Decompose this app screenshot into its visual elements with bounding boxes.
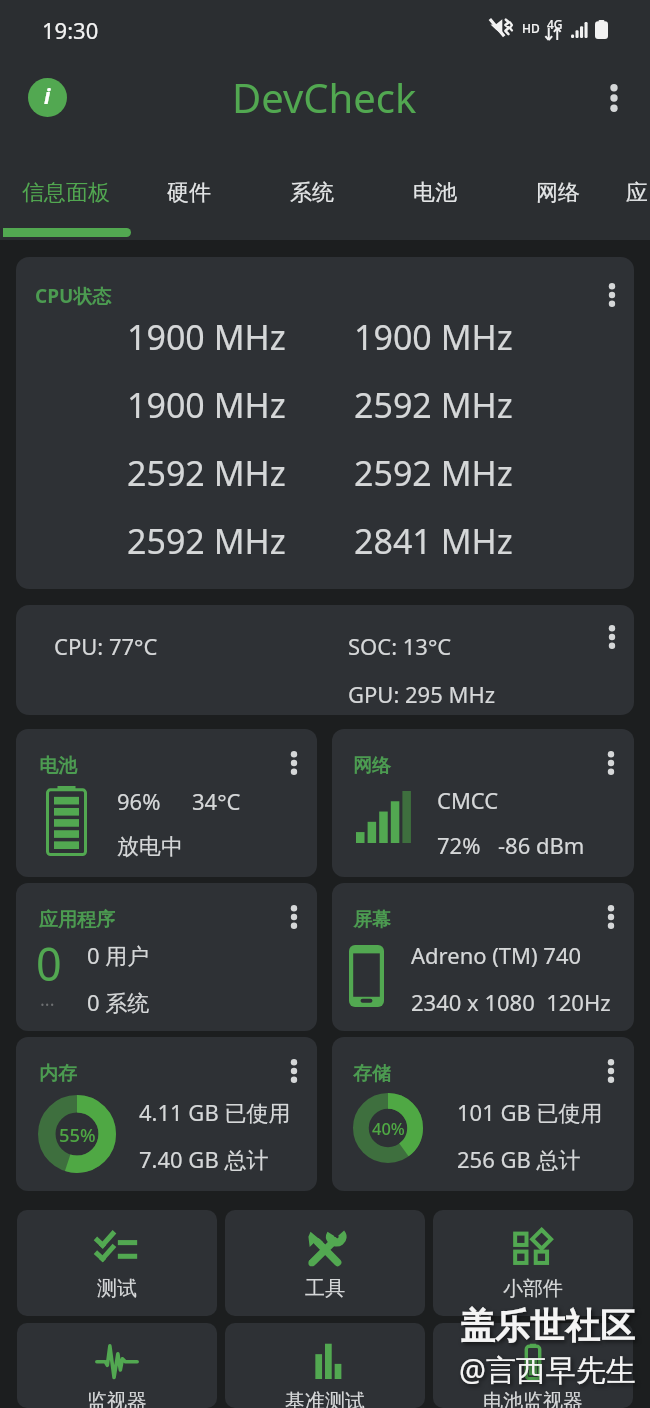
staticText: 监视器 — [87, 1389, 147, 1408]
staticText: 系统 — [290, 179, 334, 207]
button[interactable]: 监视器 — [17, 1323, 217, 1408]
button[interactable]: Card menu — [592, 744, 630, 782]
staticText: i — [44, 82, 51, 111]
staticText: ... — [40, 987, 55, 1012]
staticText: 小部件 — [503, 1276, 563, 1301]
staticText: 96% — [117, 786, 161, 816]
staticText: 工具 — [305, 1276, 345, 1301]
staticText: SOC: 13°C — [348, 631, 452, 661]
staticText: 测试 — [97, 1276, 137, 1301]
staticText: 7.40 GB 总计 — [139, 1144, 269, 1174]
staticText: 0 — [36, 933, 62, 994]
staticText: 0 用户 — [87, 940, 150, 970]
staticText: 网络 — [353, 754, 391, 778]
button[interactable]: 网络 — [332, 729, 634, 877]
button[interactable]: 应用程序 — [16, 883, 317, 1031]
staticText: 信息面板 — [22, 179, 110, 207]
button[interactable]: 系统 — [246, 150, 369, 240]
staticText: 4G — [547, 16, 563, 32]
button[interactable]: 电池监视器 — [433, 1323, 633, 1408]
button[interactable]: Card menu — [593, 618, 631, 656]
staticText: DevCheck — [232, 70, 417, 124]
staticText: 19:30 — [42, 15, 99, 45]
staticText: CPU: 77°C — [54, 631, 158, 661]
staticText: 4.11 GB 已使用 — [139, 1097, 291, 1127]
staticText: 应 — [626, 179, 648, 207]
staticText: 应用程序 — [39, 908, 115, 932]
staticText: 电池 — [39, 754, 77, 778]
staticText: 2592 MHz — [354, 382, 513, 428]
button[interactable]: 基准测试 — [225, 1323, 425, 1408]
staticText: 0 系统 — [87, 987, 150, 1017]
staticText: 2592 MHz — [127, 450, 286, 496]
staticText: Adreno (TM) 740 — [411, 940, 582, 970]
staticText: 电池监视器 — [483, 1389, 583, 1408]
staticText: 34°C — [192, 786, 241, 816]
staticText: 2592 MHz — [354, 450, 513, 496]
staticText: 放电中 — [117, 833, 183, 861]
staticText: 盖乐世社区 — [460, 1304, 635, 1348]
button[interactable]: 屏幕 — [332, 883, 634, 1031]
staticText: 存储 — [353, 1062, 391, 1086]
staticText: -86 dBm — [498, 830, 585, 860]
staticText: 1900 MHz — [354, 314, 513, 360]
button[interactable]: 硬件 — [123, 150, 246, 240]
staticText: HD — [522, 20, 540, 36]
button[interactable]: Card menu — [275, 744, 313, 782]
button[interactable]: CPU: 77°C — [16, 605, 634, 715]
button[interactable]: 存储 — [332, 1037, 634, 1191]
button[interactable]: More options — [591, 75, 637, 121]
staticText: 2592 MHz — [127, 518, 286, 564]
staticText: 55% — [59, 1122, 96, 1147]
staticText: 电池 — [413, 179, 457, 207]
button[interactable]: 网络 — [492, 150, 615, 240]
staticText: 256 GB 总计 — [457, 1144, 581, 1174]
staticText: 屏幕 — [353, 908, 391, 932]
button[interactable]: 信息面板 — [0, 150, 123, 240]
button[interactable]: 电池 — [369, 150, 492, 240]
staticText: 2841 MHz — [354, 518, 513, 564]
staticText: @言西早先生 — [459, 1349, 636, 1390]
staticText: 内存 — [39, 1062, 77, 1086]
staticText: 基准测试 — [285, 1389, 365, 1408]
button[interactable]: CPU状态 — [16, 257, 634, 589]
button[interactable]: 电池 — [16, 729, 317, 877]
button[interactable]: 内存 — [16, 1037, 317, 1191]
button[interactable]: 小部件 — [433, 1210, 633, 1316]
staticText: CPU状态 — [35, 283, 112, 309]
staticText: GPU: 295 MHz — [348, 679, 496, 709]
staticText: CMCC — [437, 785, 499, 815]
staticText: 1900 MHz — [127, 314, 286, 360]
staticText: 1900 MHz — [127, 382, 286, 428]
button[interactable]: 测试 — [17, 1210, 217, 1316]
button[interactable]: App info — [28, 78, 67, 117]
staticText: 2340 x 1080 120Hz — [411, 987, 611, 1017]
button[interactable]: 应 — [615, 150, 650, 240]
staticText: 101 GB 已使用 — [457, 1097, 603, 1127]
button[interactable]: Card menu — [275, 898, 313, 936]
staticText: 72% — [437, 830, 481, 860]
button[interactable]: Card menu — [592, 1052, 630, 1090]
button[interactable]: 工具 — [225, 1210, 425, 1316]
button[interactable]: Card menu — [593, 276, 631, 314]
staticText: 硬件 — [167, 179, 211, 207]
button[interactable]: Card menu — [275, 1052, 313, 1090]
button[interactable]: Card menu — [592, 898, 630, 936]
staticText: 40% — [372, 1117, 405, 1139]
staticText: 网络 — [536, 179, 580, 207]
